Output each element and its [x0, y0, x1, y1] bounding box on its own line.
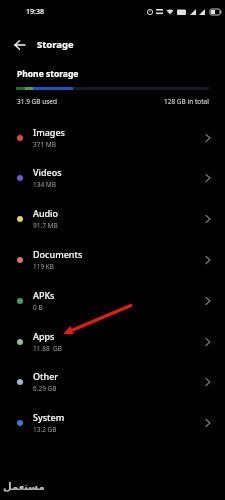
staticText: Documents	[33, 248, 83, 260]
staticText: Phone storage	[17, 68, 79, 80]
staticText: 128 GB in total	[164, 97, 209, 106]
staticText: Videos	[33, 166, 62, 178]
staticText: Audio	[33, 207, 59, 219]
staticText: 11.88 GB	[33, 344, 62, 353]
button[interactable]: Images	[0, 117, 225, 158]
staticText: 134 MB	[33, 180, 56, 189]
button[interactable]: Other	[0, 361, 225, 402]
staticText: 31.9 GB used	[17, 97, 58, 106]
staticText: APKs	[33, 289, 55, 301]
button[interactable]: System	[0, 402, 225, 443]
staticText: 19:38	[26, 7, 44, 17]
staticText: 13.2 GB	[33, 425, 57, 434]
button[interactable]: Videos	[0, 157, 225, 198]
staticText: مستعمل	[3, 481, 45, 493]
staticText: 91.7 MB	[33, 221, 58, 230]
button[interactable]: Documents	[0, 239, 225, 280]
button[interactable]	[6, 36, 34, 54]
button[interactable]: Apps	[0, 321, 225, 362]
button[interactable]: APKs	[0, 280, 225, 321]
staticText: System	[33, 411, 65, 423]
staticText: Apps	[33, 330, 55, 342]
staticText: 0 B	[33, 303, 43, 312]
staticText: Other	[33, 370, 59, 382]
staticText: 371 MB	[33, 140, 56, 149]
staticText: 119 KB	[33, 262, 55, 271]
staticText: Storage	[37, 38, 74, 51]
staticText: Images	[33, 126, 65, 138]
staticText: 6.29 GB	[33, 384, 57, 393]
button[interactable]: Audio	[0, 198, 225, 239]
